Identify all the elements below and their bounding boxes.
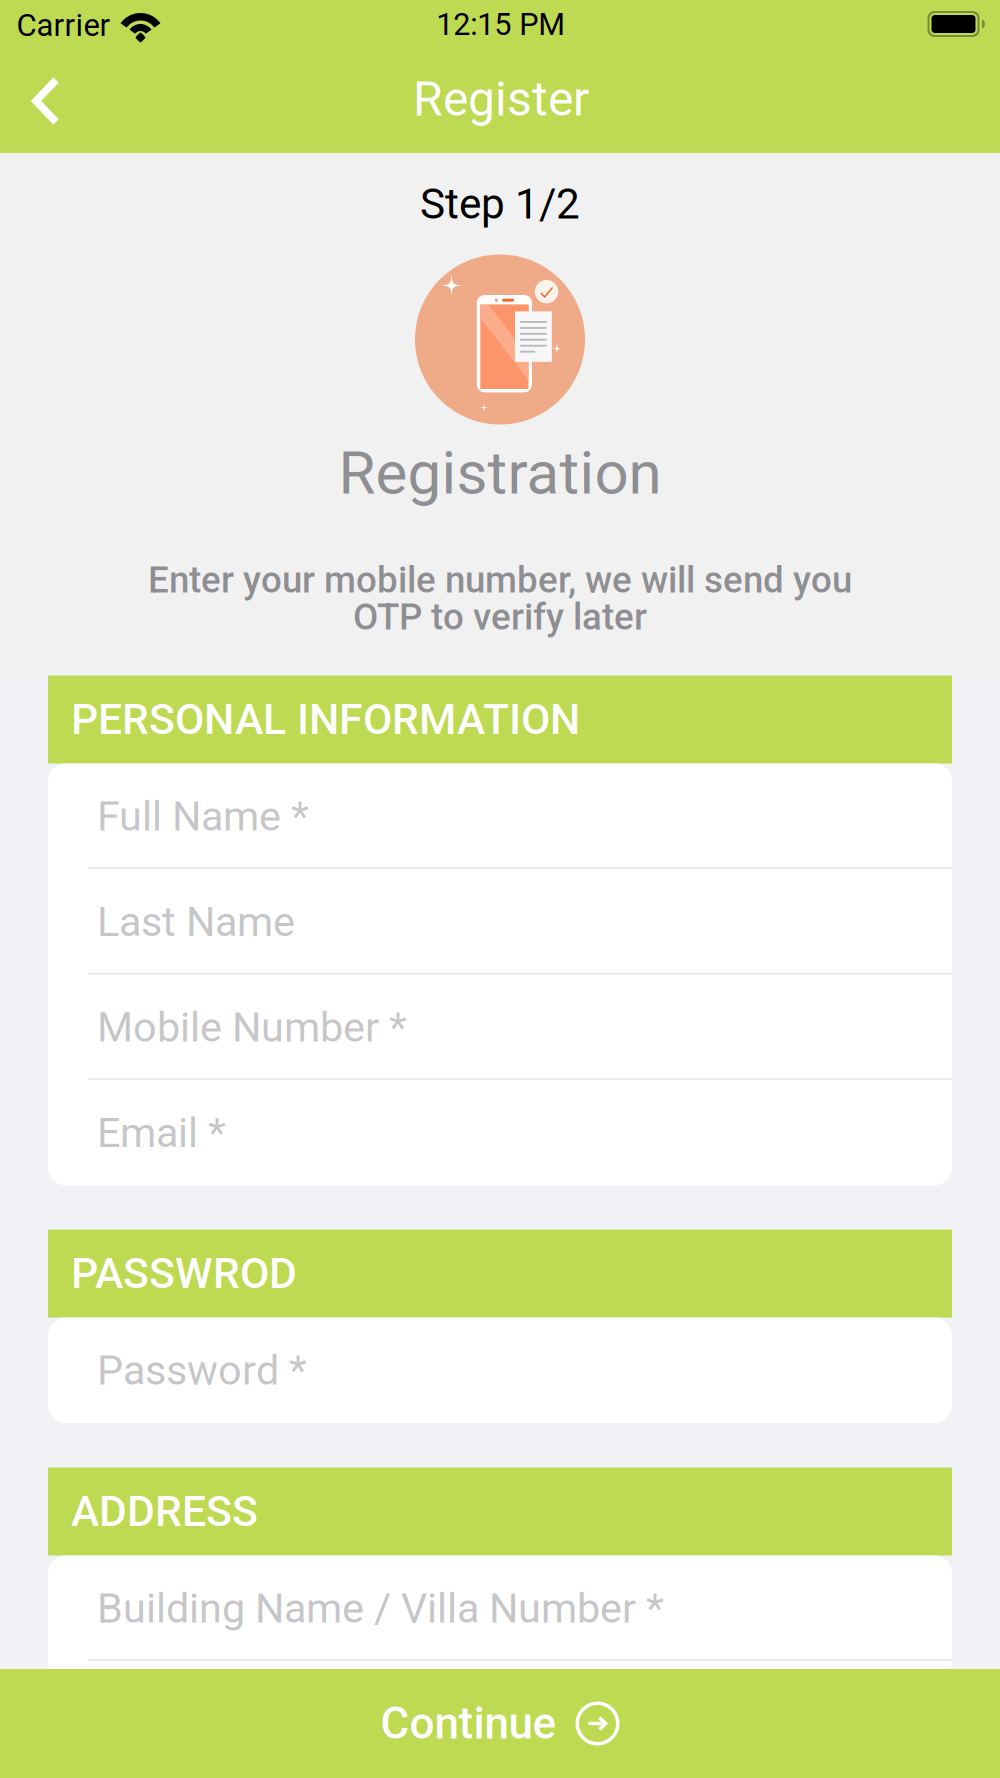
staticText: Register [413, 71, 589, 127]
button[interactable]: Password * [48, 1317, 952, 1423]
staticText: PERSONAL INFORMATION [71, 694, 580, 744]
staticText: Last Name [97, 897, 295, 946]
button[interactable]: Back [0, 50, 92, 151]
staticText: Registration [338, 438, 661, 508]
staticText: Building Name / Villa Number * [97, 1584, 664, 1632]
staticText: Continue [380, 1698, 556, 1749]
staticText: Password * [97, 1346, 307, 1394]
button[interactable]: Mobile Number * [48, 974, 952, 1080]
staticText: Mobile Number * [97, 1003, 407, 1051]
staticText: Carrier [16, 7, 110, 44]
button[interactable]: Full Name * [48, 763, 952, 869]
staticText: PASSWROD [71, 1248, 297, 1298]
staticText: OTP to verify later [353, 595, 647, 638]
button[interactable]: Area * [48, 1661, 952, 1766]
staticText: Email * [97, 1108, 226, 1157]
staticText: Enter your mobile number, we will send y… [148, 558, 852, 601]
button[interactable]: Last Name [48, 869, 952, 974]
staticText: 12:15 PM [436, 6, 565, 42]
staticText: Full Name * [97, 792, 309, 840]
button[interactable]: Building Name / Villa Number * [48, 1555, 952, 1661]
staticText: Step 1/2 [420, 179, 580, 229]
button[interactable]: Email * [48, 1080, 952, 1185]
button[interactable]: Continue [0, 1669, 1000, 1778]
staticText: ADDRESS [71, 1486, 258, 1536]
